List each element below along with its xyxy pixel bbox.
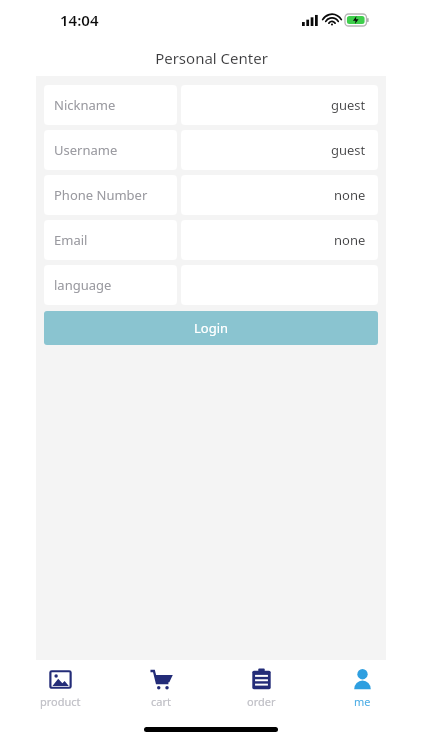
button[interactable]: Username — [44, 130, 378, 170]
staticText: none — [334, 186, 366, 204]
button[interactable]: Phone Number — [44, 175, 378, 215]
staticText: language — [54, 276, 112, 294]
staticText: none — [334, 231, 366, 249]
staticText: Login — [194, 319, 229, 337]
staticText: Username — [54, 141, 118, 159]
button[interactable]: cart — [121, 668, 201, 709]
staticText: guest — [331, 96, 366, 114]
button[interactable]: me — [322, 668, 402, 709]
staticText: cart — [151, 694, 171, 709]
staticText: product — [40, 694, 81, 709]
staticText: me — [354, 694, 371, 709]
button[interactable]: language — [44, 265, 378, 305]
staticText: Phone Number — [54, 186, 148, 204]
staticText: 14:04 — [60, 10, 99, 30]
button[interactable]: Nickname — [44, 85, 378, 125]
staticText: order — [247, 694, 276, 709]
button[interactable]: product — [20, 668, 100, 709]
staticText: Nickname — [54, 96, 116, 114]
button[interactable]: Email — [44, 220, 378, 260]
staticText: Email — [54, 231, 88, 249]
button[interactable]: order — [221, 668, 301, 709]
staticText: guest — [331, 141, 366, 159]
button[interactable]: Login — [44, 311, 378, 345]
staticText: Personal Center — [155, 48, 268, 68]
